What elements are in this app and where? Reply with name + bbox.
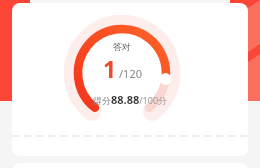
staticText: 1 bbox=[103, 53, 117, 84]
button[interactable]: Quiz result summary bbox=[12, 3, 248, 156]
staticText: 得分88.88/100分 bbox=[93, 92, 168, 107]
staticText: /120 bbox=[119, 66, 142, 81]
staticText: 答对 bbox=[113, 41, 131, 52]
